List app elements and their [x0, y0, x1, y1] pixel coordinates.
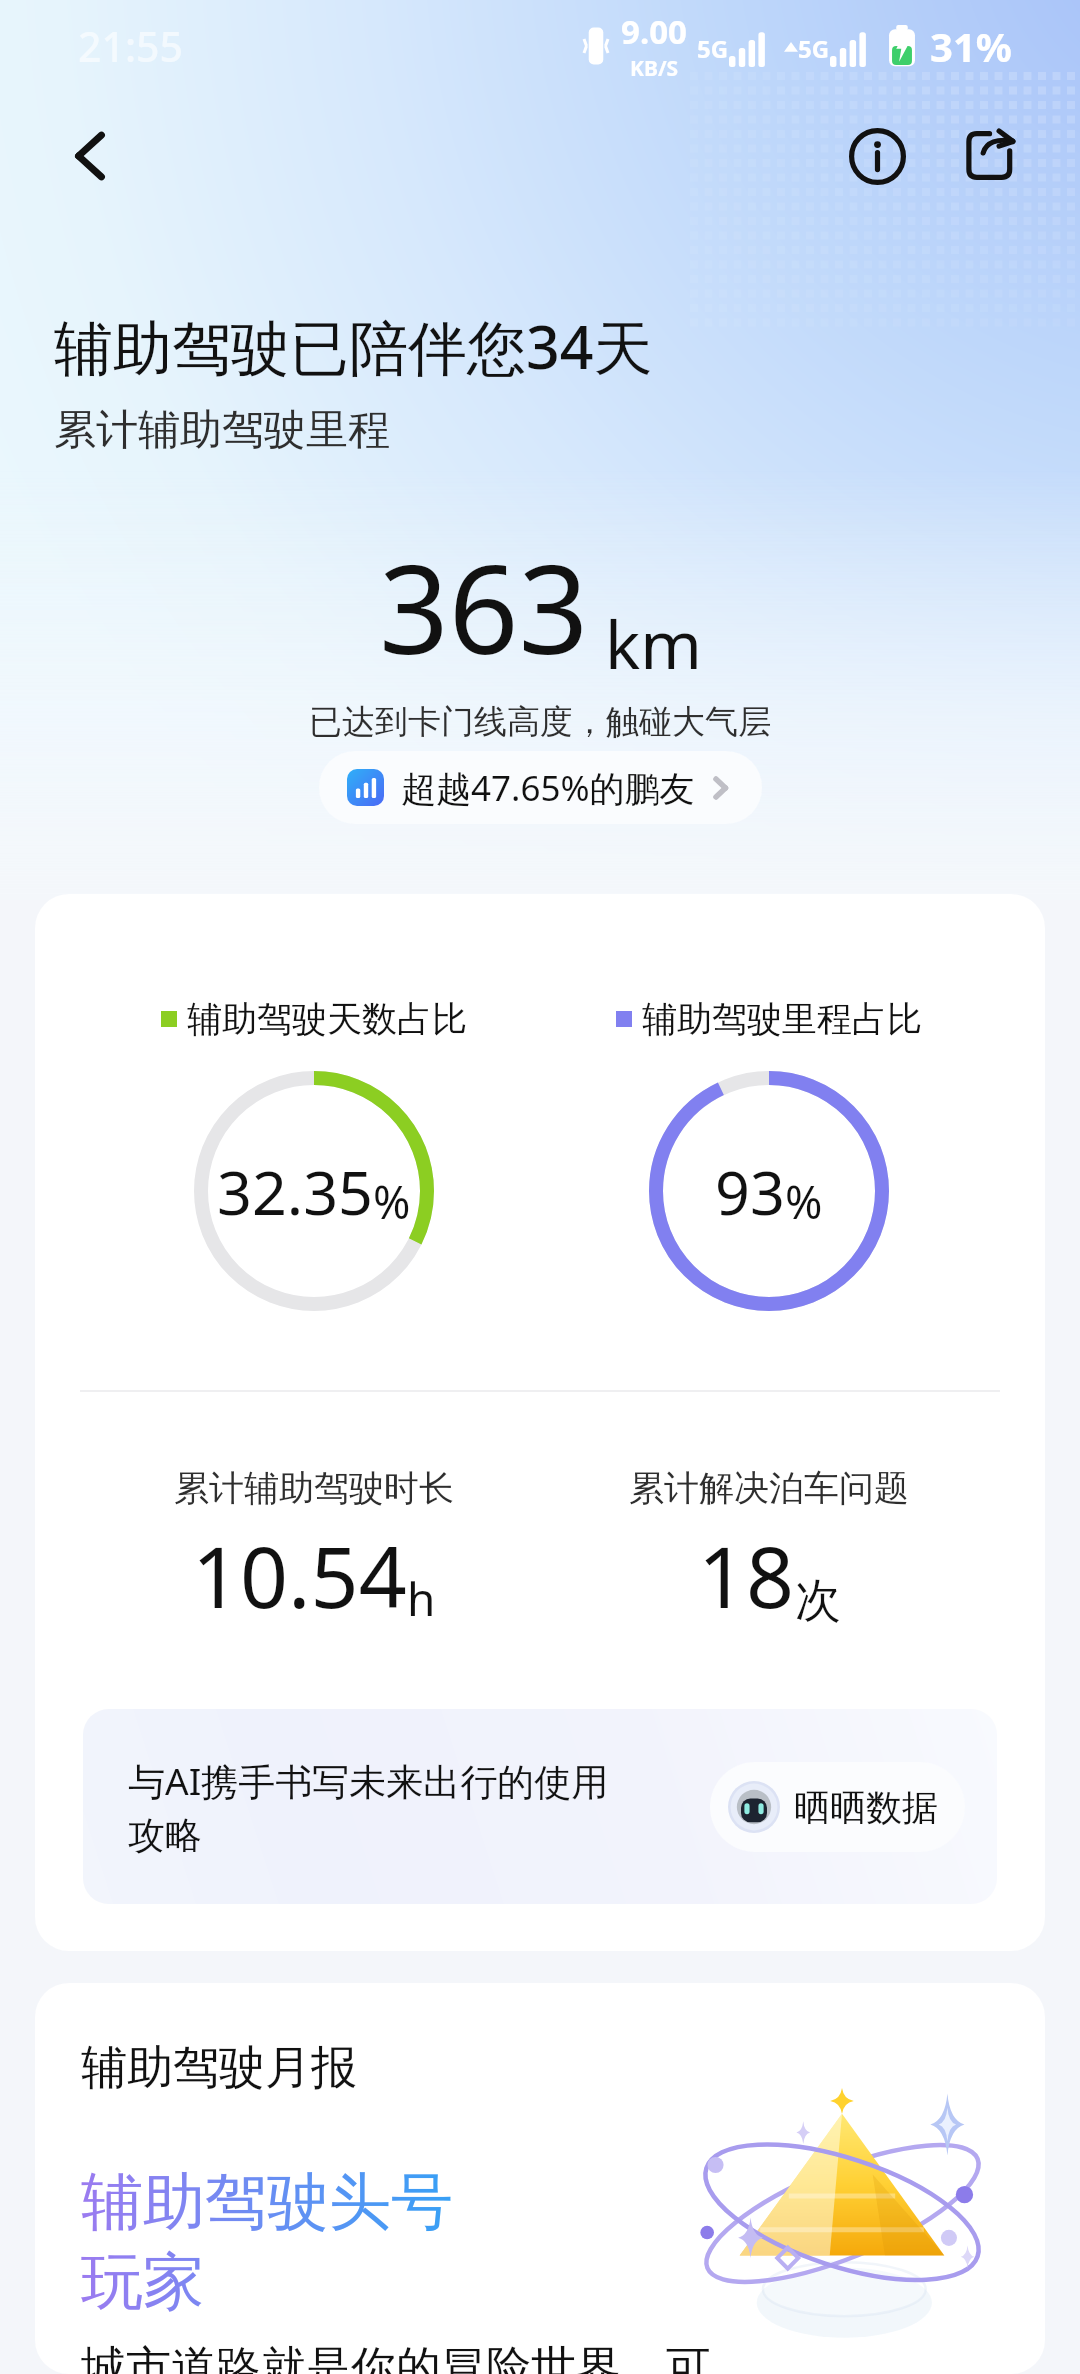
staticText: 累计辅助驾驶里程: [54, 404, 390, 457]
staticText: 晒晒数据: [794, 1785, 938, 1830]
button[interactable]: 超越47.65%的鹏友: [319, 751, 762, 824]
staticText: 363: [379, 524, 589, 690]
staticText: %: [785, 1171, 823, 1232]
staticText: 超越47.65%的鹏友: [401, 764, 695, 812]
staticText: 辅助驾驶头号 玩家: [81, 2163, 453, 2322]
staticText: 已达到卡门线高度，触碰大气层: [309, 701, 771, 743]
staticText: 累计解决泊车问题: [629, 1466, 909, 1510]
button[interactable]: Share: [946, 114, 1030, 198]
staticText: 5G: [697, 32, 729, 65]
staticText: 31%: [930, 19, 1012, 73]
staticText: KB/S: [630, 54, 679, 83]
staticText: 累计辅助驾驶时长: [174, 1466, 454, 1510]
button[interactable]: 晒晒数据: [710, 1762, 965, 1852]
staticText: 城市道路就是你的冒险世界，可: [81, 2340, 711, 2374]
staticText: h: [407, 1567, 436, 1630]
staticText: 5G: [798, 32, 830, 65]
button[interactable]: Info: [835, 114, 919, 198]
staticText: 93: [715, 1150, 785, 1233]
staticText: 18: [698, 1518, 795, 1632]
staticText: 与AI携手书写未来出行的使用攻略: [128, 1755, 628, 1859]
staticText: 辅助驾驶天数占比: [187, 997, 467, 1041]
staticText: 辅助驾驶月报: [81, 2039, 357, 2097]
button[interactable]: Back: [52, 118, 128, 194]
staticText: %: [373, 1171, 411, 1232]
staticText: 9.00: [621, 9, 687, 54]
staticText: km: [605, 598, 702, 688]
staticText: 32.35: [217, 1150, 373, 1233]
staticText: 辅助驾驶已陪伴您34天: [54, 306, 653, 387]
staticText: 21:55: [78, 18, 183, 74]
staticText: 辅助驾驶里程占比: [642, 997, 922, 1041]
staticText: 次: [795, 1572, 841, 1630]
staticText: 10.54: [192, 1518, 407, 1632]
